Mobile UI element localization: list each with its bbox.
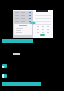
button[interactable]: Primary action: [33, 10, 53, 38]
button[interactable]: Primary action: [40, 34, 45, 36]
button[interactable]: Screenshot thumbnail: [2, 74, 7, 78]
button[interactable]: [13, 10, 33, 38]
button[interactable]: Screenshot thumbnail: [2, 64, 7, 68]
